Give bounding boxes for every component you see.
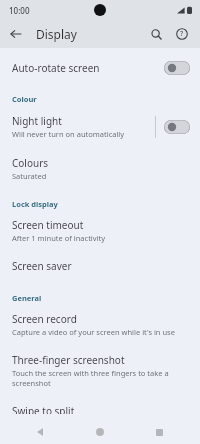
button[interactable]: Search	[144, 22, 168, 46]
button[interactable]: Screen timeout	[0, 212, 200, 249]
button[interactable]: Night light	[0, 111, 155, 142]
button[interactable]: Toggle	[164, 61, 190, 75]
staticText: 10:00	[9, 5, 30, 16]
staticText: Auto-rotate screen	[12, 61, 164, 75]
staticText: Swipe to split	[12, 404, 75, 414]
button[interactable]: Back	[30, 421, 52, 443]
button[interactable]: Toggle	[164, 120, 190, 134]
staticText: Night light	[12, 114, 62, 128]
button[interactable]: Recents	[148, 421, 170, 443]
staticText: Will never turn on automatically	[12, 129, 125, 139]
button[interactable]: Screen record	[0, 306, 200, 343]
staticText: General	[12, 293, 42, 303]
staticText: Capture a video of your screen while it'…	[12, 327, 175, 337]
button[interactable]: Swipe to split	[0, 398, 200, 420]
staticText: Screen saver	[12, 259, 72, 273]
staticText: ?	[180, 29, 184, 39]
button[interactable]: Toggle Night light	[156, 116, 200, 138]
staticText: Screen timeout	[12, 218, 84, 232]
staticText: Three-finger screenshot	[12, 353, 125, 367]
button[interactable]: Colours	[0, 150, 200, 187]
button[interactable]: Three-finger screenshot	[0, 347, 200, 394]
button[interactable]: Home	[89, 421, 111, 443]
button[interactable]: Back	[4, 22, 28, 46]
staticText: Saturated	[12, 171, 47, 181]
staticText: After 1 minute of inactivity	[12, 233, 106, 243]
button[interactable]: Auto-rotate screen	[0, 54, 200, 82]
button[interactable]: Screen saver	[0, 253, 200, 279]
staticText: Touch the screen with three fingers to t…	[12, 368, 186, 388]
staticText: Colour	[12, 94, 37, 104]
staticText: Screen record	[12, 312, 77, 326]
staticText: Display	[36, 26, 77, 42]
staticText: Colours	[12, 156, 49, 170]
staticText: Lock display	[12, 199, 58, 209]
button[interactable]: Help	[170, 22, 194, 46]
